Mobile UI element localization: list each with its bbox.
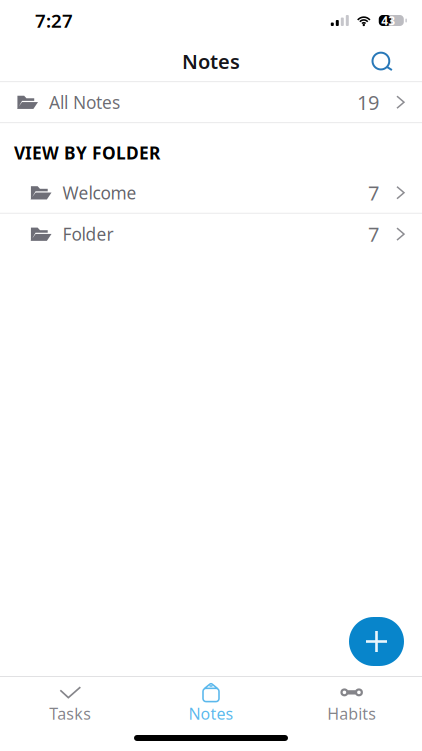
button[interactable]: All Notes xyxy=(0,82,422,123)
button[interactable]: Folder xyxy=(0,214,422,255)
staticText: 7 xyxy=(368,221,379,247)
button[interactable]: Welcome xyxy=(0,173,422,214)
staticText: 43 xyxy=(381,12,395,28)
staticText: VIEW BY FOLDER xyxy=(14,141,160,164)
staticText: Folder xyxy=(62,223,113,246)
button[interactable]: Tasks xyxy=(0,676,141,722)
button[interactable]: Habits xyxy=(281,676,422,722)
staticText: Welcome xyxy=(62,181,136,204)
button[interactable]: New note xyxy=(349,617,404,666)
button[interactable]: Notes xyxy=(141,676,281,722)
staticText: 7:27 xyxy=(35,8,73,33)
button[interactable]: Search xyxy=(360,41,422,81)
staticText: Habits xyxy=(327,703,376,724)
staticText: Tasks xyxy=(49,703,91,724)
staticText: 19 xyxy=(357,89,379,115)
staticText: Notes xyxy=(182,48,240,74)
staticText: 7 xyxy=(368,179,379,206)
staticText: Notes xyxy=(188,703,233,724)
staticText: All Notes xyxy=(49,91,120,114)
